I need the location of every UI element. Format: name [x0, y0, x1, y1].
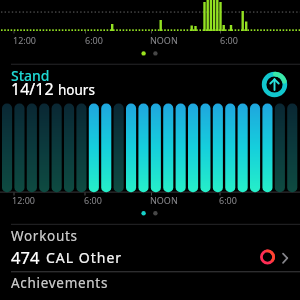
staticText: 474: [11, 246, 40, 268]
staticText: 6:00: [219, 194, 237, 206]
button[interactable]: Achievements: [0, 271, 300, 300]
staticText: 6:00: [85, 34, 103, 46]
staticText: 6:00: [220, 34, 238, 46]
staticText: Stand: [11, 66, 50, 85]
staticText: 12:00: [13, 34, 37, 46]
staticText: Workouts: [11, 227, 78, 245]
staticText: NOON: [150, 194, 178, 206]
staticText: 6:00: [84, 194, 102, 206]
staticText: 14/12: [11, 78, 54, 100]
staticText: Achievements: [11, 274, 109, 292]
button[interactable]: [261, 71, 288, 98]
button[interactable]: Workouts: [0, 224, 300, 271]
staticText: 12:00: [12, 194, 36, 206]
staticText: NOON: [150, 34, 178, 46]
staticText: CAL Other: [46, 248, 123, 267]
staticText: hours: [58, 81, 95, 99]
